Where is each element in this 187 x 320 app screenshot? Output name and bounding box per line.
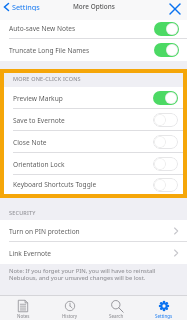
staticText: Keyboard Shortcuts Toggle [13,180,97,189]
staticText: History [62,313,78,319]
other: Toggle [154,22,179,36]
staticText: Notes [17,313,30,319]
other: Toggle [154,43,179,57]
other: Toggle [153,178,178,192]
button[interactable]: History [46,295,93,320]
staticText: Settings [12,2,40,11]
button[interactable]: Close Note [4,131,183,153]
button[interactable]: Keyboard Shortcuts Toggle [4,175,183,194]
staticText: Search [109,313,124,319]
staticText: Truncate Long File Names [9,46,90,55]
other: Toggle [153,91,178,105]
staticText: Preview Markup [13,94,63,103]
staticText: More Options [73,2,115,11]
staticText: Note: If you forget your PIN, you will h… [9,267,156,282]
button[interactable]: Search [93,295,140,320]
button[interactable]: Orientation Lock [4,153,183,175]
button[interactable]: Close [167,0,183,17]
button[interactable]: Preview Markup [4,87,183,109]
button[interactable]: Save to Evernote [4,109,183,131]
button[interactable]: Link Evernote [0,242,187,264]
staticText: Close Note [13,138,47,147]
button[interactable]: Auto-save New Notes [0,20,187,39]
staticText: Settings [155,313,173,319]
staticText: Link Evernote [9,249,52,258]
staticText: Orientation Lock [13,160,65,169]
button[interactable]: Settings [0,0,44,13]
staticText: Auto-save New Notes [9,24,76,33]
other: Toggle [153,135,178,149]
staticText: Save to Evernote [13,116,65,125]
button[interactable]: Truncate Long File Names [0,39,187,61]
button[interactable]: Notes [0,295,46,320]
other: Toggle [153,157,178,171]
staticText: SECURITY [9,209,36,216]
staticText: Turn on PIN protection [9,227,80,236]
button[interactable]: Settings [140,295,187,320]
staticText: MORE ONE-CLICK ICONS [13,75,81,82]
other: Toggle [153,113,178,127]
button[interactable]: Turn on PIN protection [0,220,187,242]
